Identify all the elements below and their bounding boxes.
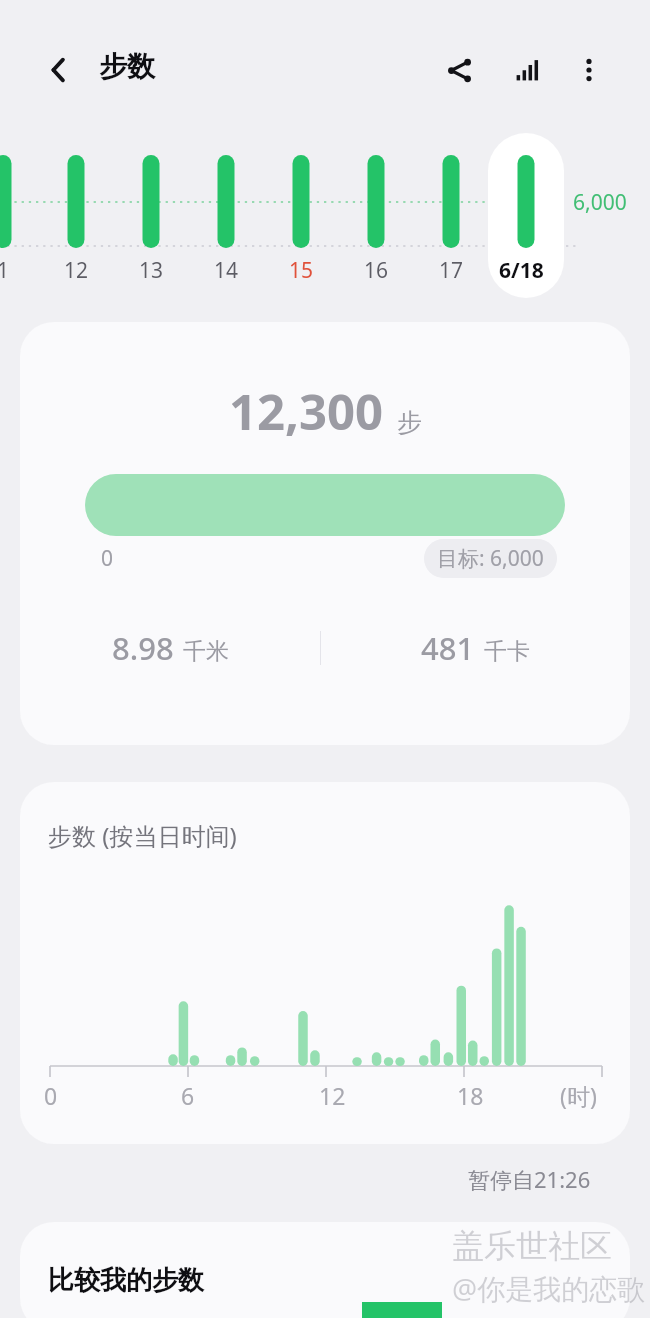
staticText: 千米	[183, 637, 229, 666]
staticText: 12	[64, 256, 89, 285]
staticText: 15	[289, 256, 314, 285]
staticText: 0	[44, 1080, 58, 1111]
staticText: 6	[181, 1080, 195, 1111]
staticText: 481	[421, 627, 475, 669]
staticText: @你是我的恋歌	[452, 1269, 646, 1307]
button[interactable]: More options	[564, 45, 614, 95]
staticText: (时)	[560, 1080, 597, 1111]
staticText: 17	[439, 256, 464, 285]
staticText: 6/18	[499, 256, 544, 285]
button[interactable]: Trends	[502, 45, 552, 95]
staticText: 比较我的步数	[48, 1264, 204, 1297]
staticText: 步数 (按当日时间)	[48, 819, 237, 852]
staticText: 13	[139, 256, 164, 285]
staticText: 步	[397, 407, 422, 438]
button[interactable]: Back	[34, 45, 84, 95]
staticText: 步数	[99, 49, 155, 84]
button[interactable]: 步数 (按当日时间)	[20, 782, 630, 1144]
staticText: 目标: 6,000	[437, 544, 544, 573]
staticText: 12	[319, 1080, 346, 1111]
button[interactable]: 比较我的步数	[20, 1222, 630, 1318]
button[interactable]: 12,300	[20, 322, 630, 745]
staticText: 14	[214, 256, 239, 285]
staticText: 12,300	[229, 378, 384, 445]
staticText: 6,000	[573, 188, 627, 217]
staticText: 0	[101, 544, 114, 573]
staticText: 暂停自21:26	[468, 1164, 591, 1194]
staticText: 千卡	[484, 637, 530, 666]
staticText: 盖乐世社区	[452, 1226, 612, 1266]
staticText: 18	[457, 1080, 484, 1111]
button[interactable]	[488, 133, 564, 298]
staticText: 16	[364, 256, 389, 285]
staticText: 1	[0, 256, 10, 285]
staticText: 8.98	[112, 627, 174, 669]
button[interactable]: Share	[434, 45, 484, 95]
